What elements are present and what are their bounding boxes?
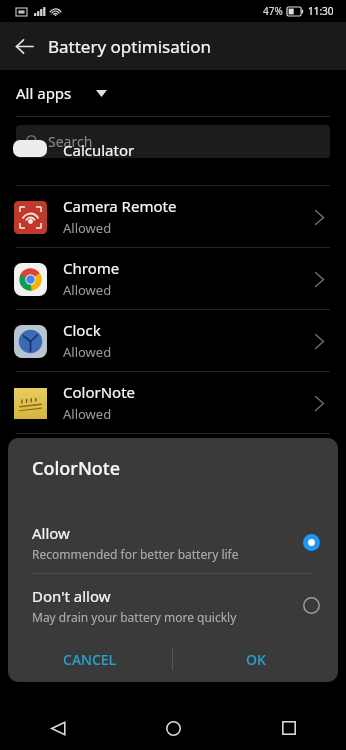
staticText: Allowed <box>63 467 112 485</box>
button[interactable]: All apps <box>0 70 346 116</box>
staticText: Allowed <box>63 405 112 423</box>
staticText: All apps <box>16 83 72 103</box>
button[interactable]: OK <box>173 636 338 682</box>
button[interactable]: Contacts <box>0 496 346 557</box>
staticText: 11:30 <box>308 4 334 18</box>
button[interactable]: Back <box>0 22 48 70</box>
button[interactable]: Search <box>16 125 330 158</box>
staticText: Chrome <box>63 258 120 278</box>
staticText: OK <box>246 650 266 669</box>
staticText: Search <box>48 132 93 151</box>
staticText: Recommended for better battery life <box>32 546 239 562</box>
staticText: Allowed <box>63 281 112 299</box>
button[interactable]: Allow <box>8 511 338 573</box>
staticText: Compass <box>63 444 128 464</box>
staticText: ColorNote <box>32 456 121 481</box>
button[interactable]: Recent apps <box>231 706 346 750</box>
staticText: Calculator <box>63 140 135 157</box>
button[interactable]: Camera Remote <box>0 186 346 247</box>
button[interactable]: Clock <box>0 310 346 371</box>
button[interactable]: ColorNote <box>0 372 346 433</box>
button[interactable]: CANCEL <box>8 636 172 682</box>
staticText: Allowed <box>63 219 112 237</box>
staticText: Clock <box>63 320 101 340</box>
staticText: Allowed <box>63 343 112 361</box>
staticText: CANCEL <box>63 650 117 669</box>
button[interactable]: Back <box>0 706 116 750</box>
button[interactable]: Don't allow <box>8 574 338 636</box>
staticText: Battery optimisation <box>48 35 212 58</box>
staticText: ColorNote <box>63 382 136 402</box>
staticText: Allow <box>32 523 70 543</box>
staticText: 47% <box>263 4 283 18</box>
staticText: Allowed <box>63 529 112 547</box>
staticText: May drain your battery more quickly <box>32 609 237 625</box>
staticText: Camera Remote <box>63 196 177 216</box>
button[interactable]: Chrome <box>0 248 346 309</box>
button[interactable]: Home <box>116 706 231 750</box>
button[interactable]: Compass <box>0 434 346 495</box>
staticText: Don't allow <box>32 586 111 606</box>
